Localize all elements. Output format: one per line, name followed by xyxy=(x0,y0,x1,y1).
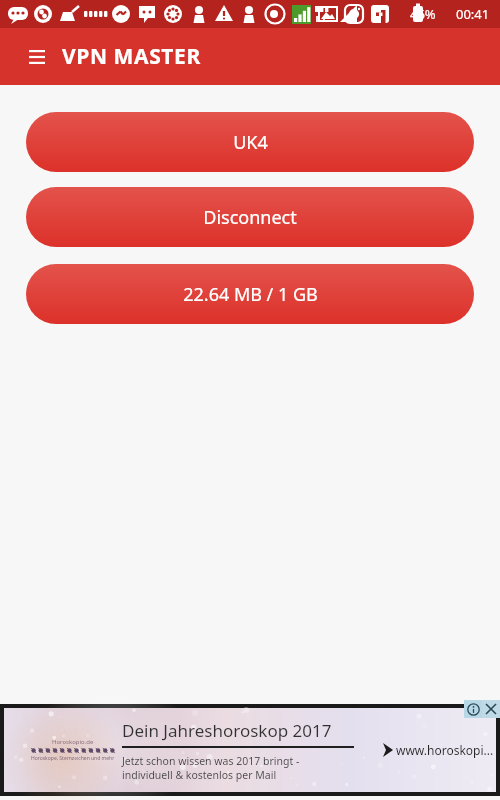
staticText: individuell & kostenlos per Mail xyxy=(122,768,277,782)
button[interactable]: Ad information xyxy=(464,700,482,718)
button[interactable]: Close ad xyxy=(482,700,500,718)
staticText: Jetzt schon wissen was 2017 bringt - xyxy=(122,754,300,768)
staticText: UK4 xyxy=(233,130,268,155)
button[interactable]: Disconnect xyxy=(26,187,474,247)
button[interactable]: UK4 xyxy=(26,112,474,172)
button[interactable]: 22.64 MB / 1 GB xyxy=(26,264,474,324)
staticText: Horoskope, Sternzeichen und mehr xyxy=(31,755,115,762)
staticText: 00:41 xyxy=(456,5,490,23)
staticText: Horoskopio.de xyxy=(52,738,94,746)
staticText: 22.64 MB / 1 GB xyxy=(183,282,318,307)
staticText: Disconnect xyxy=(203,205,297,230)
staticText: www.horoskopi... xyxy=(396,742,494,758)
staticText: 46% xyxy=(410,5,436,23)
staticText: VPN MASTER xyxy=(62,42,201,71)
staticText: Dein Jahreshoroskop 2017 xyxy=(122,719,332,742)
button[interactable]: Open navigation menu xyxy=(20,40,54,74)
